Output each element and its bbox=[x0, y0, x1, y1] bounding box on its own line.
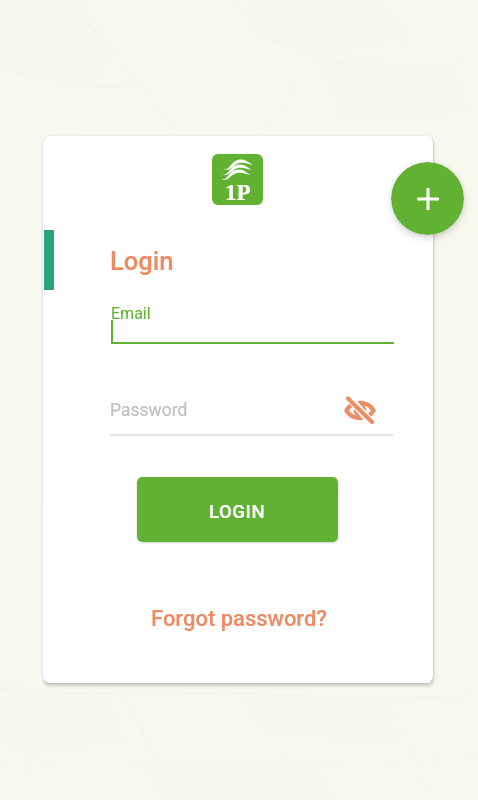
button[interactable]: LOGIN bbox=[137, 477, 338, 542]
staticText: Email bbox=[111, 304, 151, 323]
staticText: 1P bbox=[225, 180, 251, 205]
staticText: Forgot password? bbox=[151, 606, 328, 632]
staticText: Login bbox=[110, 246, 174, 276]
button[interactable]: Password input field bbox=[110, 392, 393, 436]
button[interactable]: Add bbox=[391, 162, 464, 235]
button[interactable]: Email input field bbox=[110, 300, 394, 344]
button[interactable]: Forgot password? bbox=[142, 600, 336, 638]
staticText: Password bbox=[110, 400, 188, 421]
button[interactable]: Show password bbox=[344, 394, 376, 426]
staticText: LOGIN bbox=[209, 501, 266, 523]
